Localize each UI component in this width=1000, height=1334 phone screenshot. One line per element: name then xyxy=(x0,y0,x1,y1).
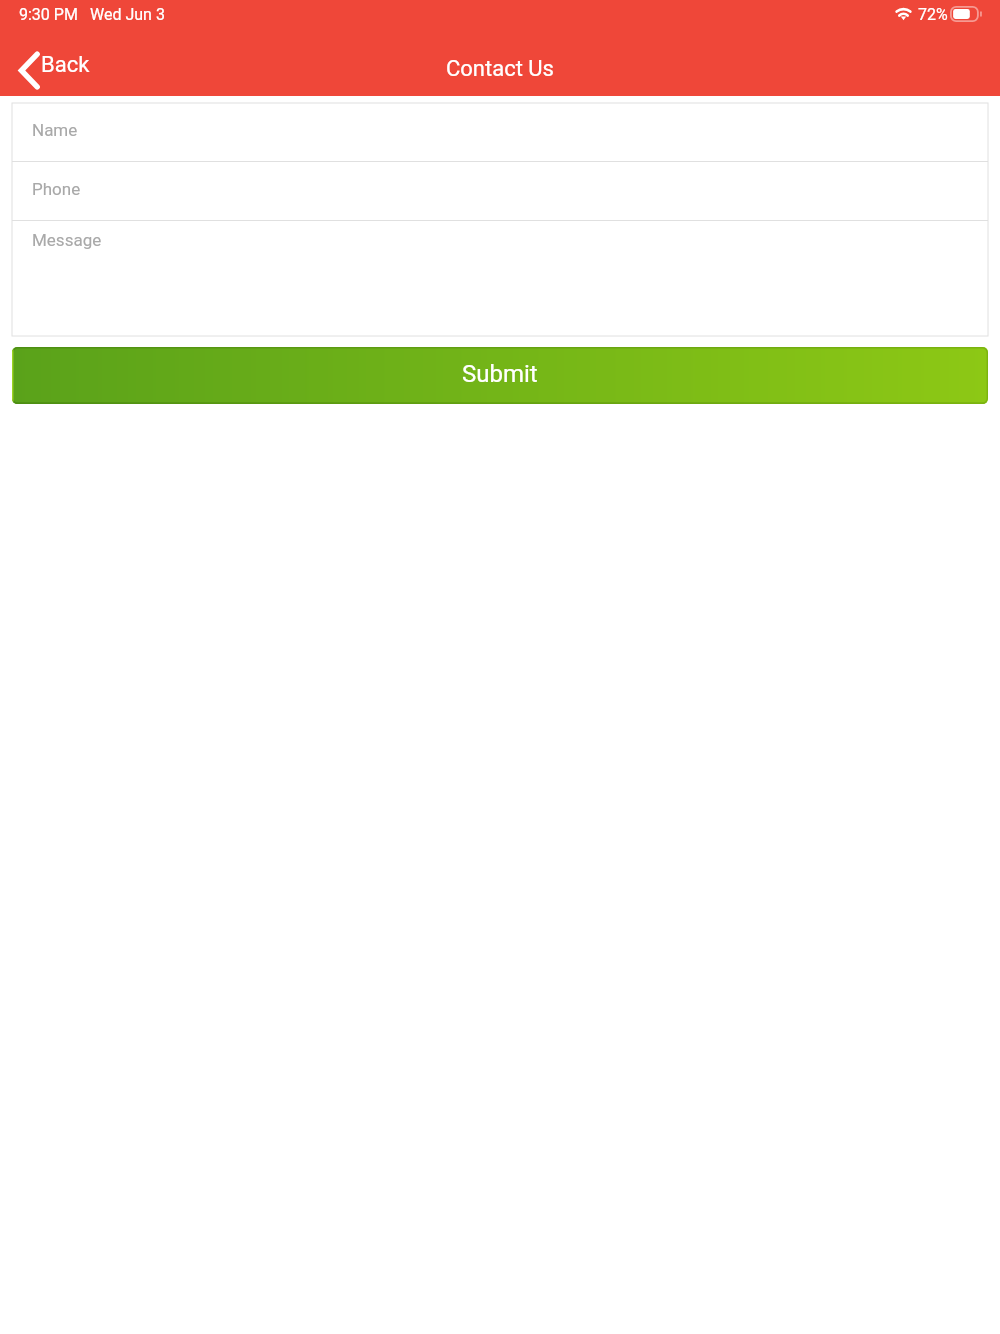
staticText: Name xyxy=(32,120,78,140)
staticText: Message xyxy=(32,230,102,250)
button[interactable]: Name xyxy=(12,103,988,161)
staticText: Wed Jun 3 xyxy=(90,5,165,24)
staticText: Submit xyxy=(462,360,538,388)
other: Back xyxy=(18,44,42,86)
button[interactable]: Phone xyxy=(12,162,988,220)
button[interactable]: Message xyxy=(12,221,988,336)
staticText: Phone xyxy=(32,179,81,199)
staticText: Back xyxy=(41,52,90,78)
button[interactable]: Back xyxy=(10,40,99,90)
staticText: 72% xyxy=(918,5,948,24)
staticText: 9:30 PM xyxy=(19,5,78,24)
staticText: Contact Us xyxy=(446,56,554,82)
button[interactable]: Submit xyxy=(12,347,988,404)
